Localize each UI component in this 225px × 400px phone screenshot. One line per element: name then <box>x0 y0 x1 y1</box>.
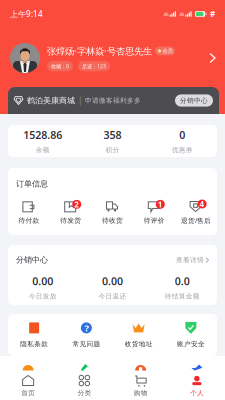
staticText: 优惠券 <box>172 146 193 154</box>
button[interactable]: 0 <box>147 128 217 154</box>
button[interactable]: 2 <box>50 201 92 224</box>
button[interactable]: 4 <box>175 201 217 225</box>
staticText: 待结算金额 <box>165 292 200 300</box>
button[interactable]: 待收货 <box>92 201 133 224</box>
staticText: 个人 <box>190 389 204 397</box>
staticText: 0.0 <box>175 274 190 288</box>
staticText: 2 <box>74 199 79 210</box>
staticText: 4G <box>179 11 184 17</box>
button[interactable]: 收货地址 <box>112 322 165 348</box>
staticText: 订单信息 <box>16 179 48 189</box>
staticText: | <box>78 95 82 106</box>
button[interactable]: 0.0 <box>147 274 217 300</box>
button[interactable]: 购物 <box>112 375 169 397</box>
staticText: 0.00 <box>102 274 123 288</box>
staticText: 今日发放 <box>29 292 57 300</box>
staticText: 1528.86 <box>23 128 62 142</box>
staticText: 待付款 <box>18 216 39 224</box>
staticText: 购物 <box>134 389 148 397</box>
staticText: 查看详情 <box>176 256 204 264</box>
staticText: 积分 <box>105 146 119 154</box>
button[interactable]: 0.00 <box>78 274 147 300</box>
button[interactable]: 358 <box>78 128 147 154</box>
button[interactable]: 1528.86 <box>8 128 78 154</box>
staticText: 隐私条款 <box>20 340 48 348</box>
button[interactable]: 个人 <box>169 375 225 397</box>
staticText: 0 <box>179 128 185 142</box>
staticText: 余额 <box>36 146 50 154</box>
staticText: ? <box>84 322 88 334</box>
button[interactable]: ? <box>60 322 112 348</box>
staticText: 收藏：0 <box>51 63 69 70</box>
button[interactable]: 张焞炀·字林焱·号杏思先生 <box>10 41 215 75</box>
staticText: 退货/售后 <box>181 216 211 225</box>
staticText: 分销中心 <box>180 96 208 105</box>
staticText: 今日返还 <box>98 292 126 300</box>
staticText: 4G <box>164 11 169 17</box>
staticText: 分销中心 <box>16 255 48 265</box>
staticText: 张焞炀·字林焱·号杏思先生 <box>47 45 152 57</box>
staticText: 鹤泊美康商城 <box>27 96 75 105</box>
staticText: 收货地址 <box>125 340 153 348</box>
button[interactable]: 隐私条款 <box>8 322 60 348</box>
button[interactable]: 首页 <box>0 375 56 397</box>
staticText: 待评价 <box>144 216 165 224</box>
staticText: 1 <box>158 199 163 210</box>
button[interactable]: 待付款 <box>8 201 50 224</box>
staticText: 账户安全 <box>177 340 205 348</box>
staticText: 申请微客福利多多 <box>85 96 141 105</box>
staticText: 4 <box>200 199 205 209</box>
staticText: 待收货 <box>102 216 123 224</box>
staticText: # <box>210 9 215 19</box>
button[interactable]: 查看详情 <box>176 256 208 264</box>
staticText: 待发货 <box>60 216 81 224</box>
button[interactable]: 分销中心 <box>175 94 213 107</box>
button[interactable]: 0.00 <box>8 274 78 300</box>
staticText: 首页 <box>21 389 35 397</box>
staticText: 足迹：123 <box>82 63 106 70</box>
staticText: 分类 <box>77 389 91 397</box>
button[interactable]: 1 <box>133 201 175 224</box>
staticText: 上午9:14 <box>10 9 43 19</box>
staticText: 0.00 <box>32 274 53 288</box>
button[interactable]: 分类 <box>56 375 112 397</box>
staticText: 358 <box>103 128 121 142</box>
staticText: 常见问题 <box>72 340 100 348</box>
button[interactable]: 账户安全 <box>165 322 217 348</box>
staticText: 会员 <box>162 48 172 54</box>
